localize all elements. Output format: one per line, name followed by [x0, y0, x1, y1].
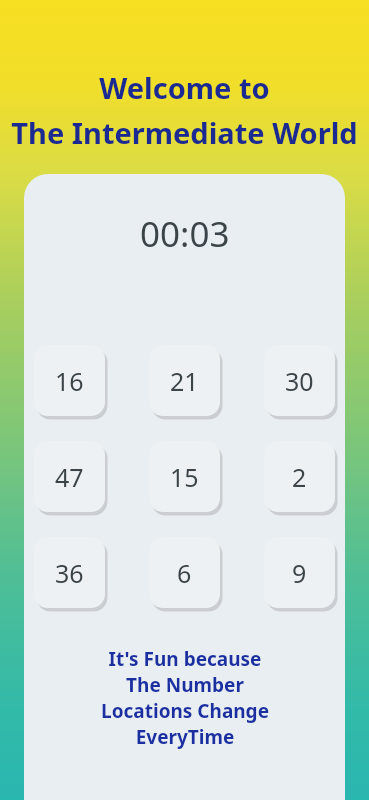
button[interactable]: 36	[34, 537, 105, 608]
button[interactable]: 9	[264, 537, 335, 608]
staticText: 6	[177, 556, 192, 590]
staticText: 21	[170, 364, 199, 398]
staticText: Welcome to	[99, 68, 270, 107]
staticText: The Intermediate World	[11, 113, 358, 152]
staticText: 00:03	[140, 210, 230, 258]
button[interactable]: 47	[34, 441, 105, 512]
staticText: 16	[55, 364, 84, 398]
button[interactable]: 30	[264, 345, 335, 416]
staticText: It's Fun because The Number Locations Ch…	[101, 646, 269, 750]
staticText: 30	[285, 364, 314, 398]
button[interactable]: 15	[149, 441, 220, 512]
staticText: 9	[292, 556, 307, 590]
staticText: 2	[292, 460, 307, 494]
button[interactable]: 6	[149, 537, 220, 608]
staticText: 15	[170, 460, 199, 494]
button[interactable]: 2	[264, 441, 335, 512]
button[interactable]: 16	[34, 345, 105, 416]
button[interactable]: 21	[149, 345, 220, 416]
staticText: 36	[55, 556, 84, 590]
staticText: 47	[55, 460, 84, 494]
